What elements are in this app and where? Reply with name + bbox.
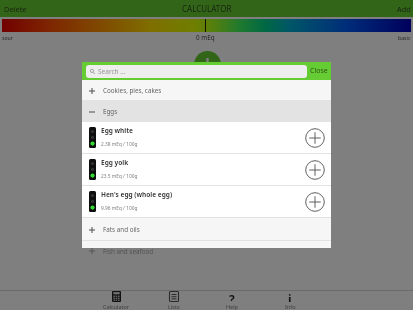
staticText: Close <box>310 66 328 76</box>
button[interactable]: Eggs <box>82 101 331 122</box>
button[interactable]: Add Egg yolk <box>305 160 325 180</box>
button[interactable]: Egg white <box>82 122 331 154</box>
staticText: Hen's egg (whole egg) <box>101 190 173 199</box>
staticText: Eggs <box>103 107 118 116</box>
button[interactable]: Lists <box>145 290 203 310</box>
button[interactable]: Delete <box>4 4 27 14</box>
button[interactable]: Close <box>307 62 331 80</box>
staticText: 9.96 mEq / 100g <box>101 205 138 212</box>
staticText: 2.38 mEq / 100g <box>101 141 138 148</box>
button[interactable]: Add food <box>194 51 221 78</box>
staticText: Search ... <box>98 67 126 76</box>
button[interactable]: Egg yolk <box>82 154 331 186</box>
staticText: ? <box>229 291 235 302</box>
staticText: Egg white <box>101 126 133 135</box>
staticText: CALCULATOR <box>182 3 232 14</box>
button[interactable]: Add <box>397 4 411 14</box>
button[interactable]: Search ... <box>86 65 307 78</box>
staticText: i <box>288 291 292 302</box>
staticText: Egg yolk <box>101 158 129 167</box>
button[interactable]: Help <box>203 290 261 310</box>
staticText: Lists <box>168 303 180 310</box>
button[interactable]: Cookies, pies, cakes <box>82 80 331 101</box>
staticText: 0 mEq <box>196 33 215 42</box>
button[interactable]: Fats and oils <box>82 218 331 241</box>
button[interactable]: Hen's egg (whole egg) <box>82 186 331 218</box>
button[interactable]: Calculator <box>87 290 145 310</box>
staticText: Fats and oils <box>103 225 140 234</box>
staticText: 23.5 mEq / 100g <box>101 173 138 180</box>
button[interactable]: Add Egg white <box>305 128 325 148</box>
staticText: sour <box>2 34 13 41</box>
staticText: Calculator <box>103 303 130 310</box>
staticText: Fish and seafood <box>103 247 154 254</box>
button[interactable]: Info <box>261 290 319 310</box>
staticText: Help <box>226 303 238 310</box>
staticText: Cookies, pies, cakes <box>103 86 162 95</box>
staticText: Info <box>285 303 296 310</box>
button[interactable]: Add Hen's egg (whole egg) <box>305 192 325 212</box>
staticText: basic <box>398 34 411 41</box>
